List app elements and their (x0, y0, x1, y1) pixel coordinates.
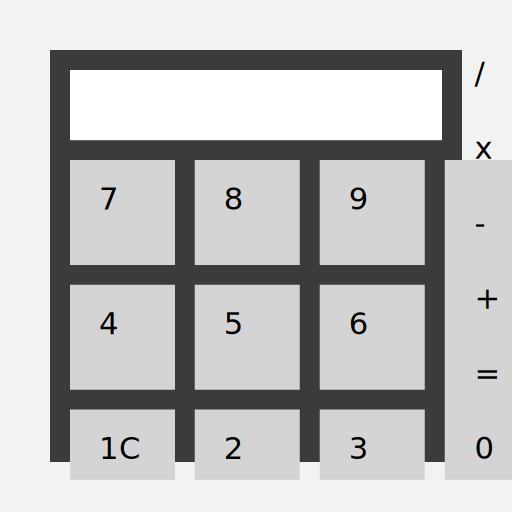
button[interactable]: = (475, 336, 512, 411)
button[interactable]: 6 (320, 285, 425, 390)
staticText: / (475, 55, 485, 91)
staticText: 6 (349, 306, 369, 341)
staticText: 9 (349, 181, 369, 217)
staticText: + (475, 280, 501, 316)
staticText: - (475, 205, 486, 241)
staticText: 5 (224, 306, 244, 341)
button[interactable]: 0 (475, 411, 512, 486)
staticText: x (475, 130, 493, 166)
button[interactable]: + (475, 261, 512, 336)
button[interactable]: / (475, 36, 512, 111)
button[interactable]: 3 (320, 409, 425, 480)
staticText: 0 (475, 430, 495, 466)
staticText: 8 (224, 181, 244, 217)
staticText: 3 (349, 430, 369, 466)
button[interactable]: 4 (70, 285, 175, 390)
button[interactable]: 7 (70, 160, 175, 265)
staticText: 4 (99, 306, 119, 341)
button[interactable]: 8 (195, 160, 300, 265)
staticText: 1C (99, 430, 140, 466)
button[interactable]: 5 (195, 285, 300, 390)
staticText: 7 (99, 181, 119, 217)
button[interactable]: 2 (195, 409, 300, 480)
button[interactable]: 1C (70, 409, 175, 480)
button[interactable]: - (475, 186, 512, 261)
staticText: = (475, 355, 501, 391)
button[interactable]: 9 (320, 160, 425, 265)
staticText: 2 (224, 430, 244, 466)
button[interactable]: x (475, 111, 512, 186)
